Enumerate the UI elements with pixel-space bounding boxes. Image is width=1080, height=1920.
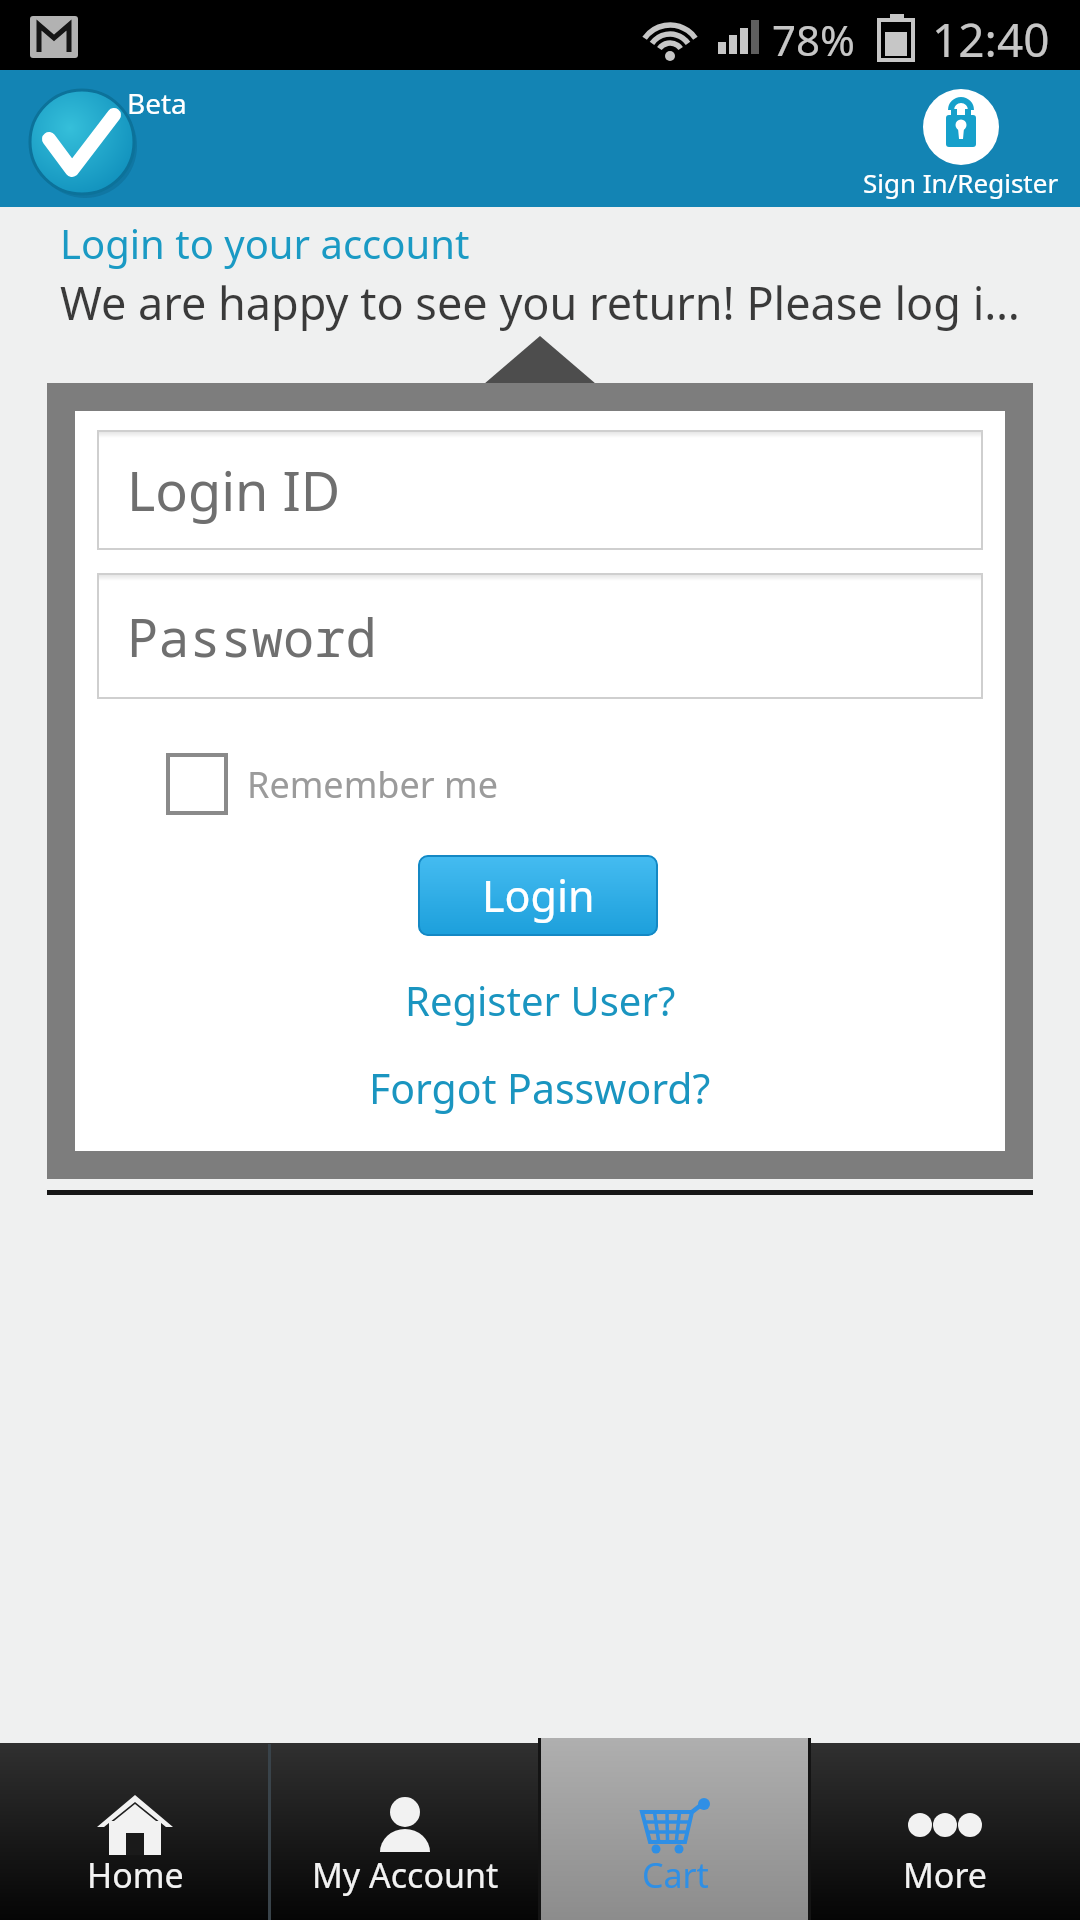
staticText: Password xyxy=(127,601,377,672)
staticText: Remember me xyxy=(247,760,498,809)
button[interactable]: Forgot Password? xyxy=(369,1060,711,1116)
staticText: More xyxy=(903,1852,987,1898)
staticText: Home xyxy=(87,1852,184,1898)
staticText: Cart xyxy=(642,1852,709,1898)
staticText: Login ID xyxy=(127,453,341,527)
button[interactable]: Remember me xyxy=(166,753,498,815)
button[interactable]: My Account xyxy=(270,1743,540,1920)
staticText: Login to your account xyxy=(60,216,470,270)
button[interactable]: Password xyxy=(97,573,983,699)
button[interactable]: More xyxy=(810,1743,1080,1920)
button[interactable]: Login ID xyxy=(97,430,983,550)
button[interactable]: Home xyxy=(0,1743,270,1920)
button[interactable]: Register User? xyxy=(405,973,676,1027)
staticText: 12:40 xyxy=(932,8,1050,71)
staticText: Sign In/Register xyxy=(863,165,1059,200)
staticText: We are happy to see you return! Please l… xyxy=(60,272,1020,333)
button[interactable]: Cart xyxy=(540,1738,810,1920)
button[interactable]: Login xyxy=(418,855,658,936)
staticText: Beta xyxy=(127,84,187,122)
button[interactable] xyxy=(28,88,136,196)
staticText: 78% xyxy=(772,11,855,68)
staticText: My Account xyxy=(312,1852,499,1898)
button[interactable]: Sign In/Register xyxy=(842,80,1080,205)
staticText: Login xyxy=(482,866,595,925)
